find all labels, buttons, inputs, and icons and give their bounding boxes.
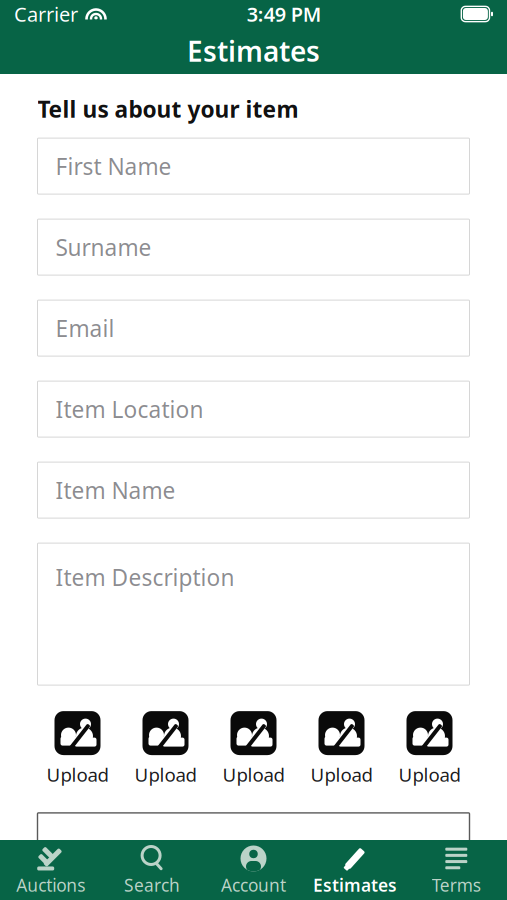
staticText: Terms [432,873,481,896]
button[interactable]: Upload [301,711,381,787]
staticText: Item Location [55,394,203,424]
staticText: Estimates [187,32,320,70]
button[interactable]: Terms [406,837,507,900]
button[interactable] [37,813,469,869]
staticText: Auctions [16,873,85,896]
button[interactable]: Item Location [37,381,469,437]
staticText: Carrier [14,1,78,27]
button[interactable]: Surname [37,219,469,275]
staticText: Email [55,313,114,343]
staticText: Upload [310,762,372,787]
button[interactable]: Item Description [37,543,469,685]
staticText: Upload [134,762,196,787]
staticText: Item Description [55,562,234,592]
button[interactable]: Auctions [0,837,101,900]
button[interactable]: Item Name [37,462,469,518]
staticText: Upload [46,762,108,787]
button[interactable]: Upload [125,711,205,787]
staticText: Upload [398,762,460,787]
staticText: Search [124,873,180,896]
button[interactable]: Upload [389,711,469,787]
staticText: 3:49 PM [247,1,322,27]
button[interactable]: Upload [37,711,117,787]
staticText: First Name [55,151,171,181]
staticText: Upload [222,762,284,787]
button[interactable]: Upload [213,711,293,787]
staticText: Item Name [55,475,175,505]
staticText: Estimates [313,873,397,896]
staticText: Tell us about your item [37,94,298,124]
button[interactable]: First Name [37,138,469,194]
button[interactable]: Estimates [304,837,406,900]
button[interactable]: Account [203,837,304,900]
button[interactable]: Search [101,837,203,900]
button[interactable]: Email [37,300,469,356]
staticText: Surname [55,232,151,262]
staticText: Account [221,873,286,896]
